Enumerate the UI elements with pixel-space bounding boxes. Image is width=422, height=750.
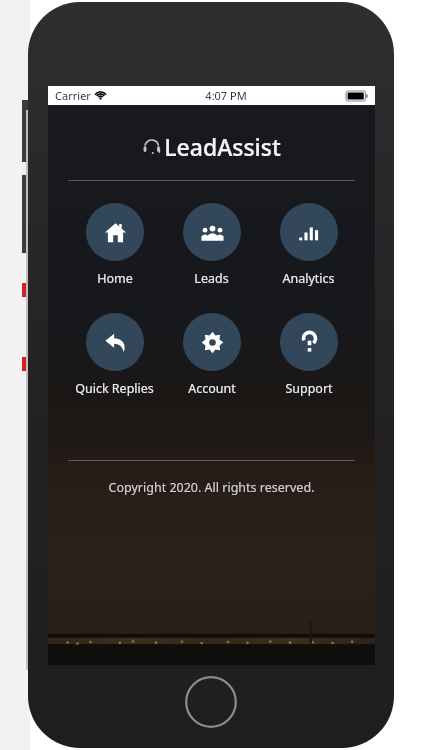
staticText: Home — [97, 270, 133, 287]
button[interactable]: Account — [163, 313, 260, 397]
staticText: Quick Replies — [75, 380, 154, 397]
staticText: 4:07 PM — [205, 88, 247, 103]
staticText: Carrier — [55, 88, 91, 103]
button[interactable]: Analytics — [260, 203, 357, 287]
button[interactable]: Leads — [163, 203, 260, 287]
staticText: Copyright 2020. All rights reserved. — [48, 479, 375, 496]
staticText: Leads — [194, 270, 229, 287]
button[interactable]: Home — [66, 203, 163, 287]
staticText: Support — [285, 380, 333, 397]
button[interactable]: Support — [260, 313, 357, 397]
button[interactable]: Quick Replies — [66, 313, 163, 397]
staticText: Analytics — [282, 270, 335, 287]
staticText: Account — [188, 380, 236, 397]
staticText: LeadAssist — [164, 131, 281, 162]
